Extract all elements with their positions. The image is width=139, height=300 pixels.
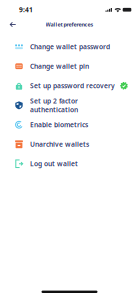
button[interactable]: Enable biometrics	[0, 115, 139, 134]
button[interactable]: Log out wallet	[0, 154, 139, 173]
button[interactable]: Unarchive wallets	[0, 134, 139, 154]
button[interactable]: Set up password recovery	[0, 76, 139, 95]
button[interactable]: Set up 2 factor authentication	[0, 95, 139, 115]
staticText: 9:41	[19, 5, 33, 14]
staticText: Change wallet password	[30, 42, 110, 51]
button[interactable]: Change wallet pin	[0, 56, 139, 76]
staticText: Unarchive wallets	[30, 140, 89, 149]
button[interactable]: Back	[0, 17, 21, 31]
button[interactable]: Change wallet password	[0, 37, 139, 56]
staticText: Change wallet pin	[30, 62, 89, 71]
staticText: Enable biometrics	[30, 120, 88, 129]
staticText: Set up 2 factor authentication	[30, 96, 78, 114]
staticText: Set up password recovery	[30, 81, 115, 90]
staticText: Log out wallet	[30, 159, 78, 168]
staticText: Wallet preferences	[45, 21, 93, 28]
